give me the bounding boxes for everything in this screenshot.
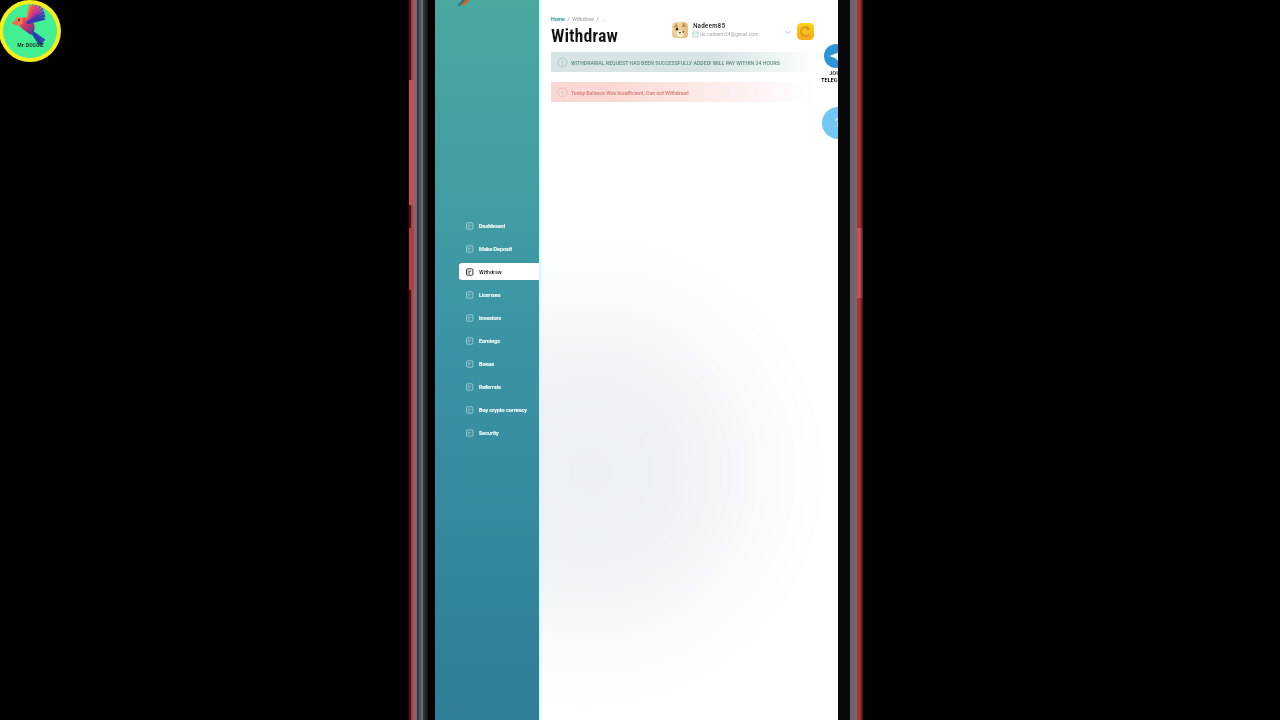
staticText: Investors bbox=[479, 315, 502, 321]
button[interactable]: Dashboard bbox=[459, 217, 539, 234]
button[interactable]: Bonus bbox=[459, 355, 539, 372]
button[interactable]: Join Telegram bbox=[824, 44, 848, 68]
button[interactable]: Buy crypto currency bbox=[459, 401, 539, 418]
staticText: Home bbox=[551, 16, 565, 22]
button[interactable]: Refresh balance bbox=[797, 23, 814, 40]
button[interactable]: Nadeem85 bbox=[672, 22, 791, 41]
staticText: Licenses bbox=[479, 292, 501, 298]
button[interactable]: Support chat bbox=[822, 107, 854, 139]
staticText: JOIN TELEGRAM bbox=[821, 70, 850, 84]
staticText: Withdraw bbox=[551, 25, 618, 46]
button[interactable]: Investors bbox=[459, 309, 539, 326]
staticText: Earnings bbox=[479, 338, 501, 344]
staticText: Withdraw bbox=[479, 269, 502, 275]
button[interactable]: Referrals bbox=[459, 378, 539, 395]
staticText: Bonus bbox=[479, 361, 495, 367]
staticText: Make Deposit bbox=[479, 246, 513, 252]
button[interactable]: Make Deposit bbox=[459, 240, 539, 257]
staticText: Mr. DOGGIE bbox=[17, 42, 44, 48]
button[interactable]: Earnings bbox=[459, 332, 539, 349]
button[interactable]: Licenses bbox=[459, 286, 539, 303]
staticText: Referrals bbox=[479, 384, 501, 390]
staticText: du.nadeem24@gmail.com bbox=[700, 31, 759, 37]
staticText: Security bbox=[479, 430, 499, 436]
staticText: Dashboard bbox=[479, 223, 506, 229]
staticText: WITHDRAWAL REQUEST HAS BEEN SUCCESSFULLY… bbox=[571, 60, 780, 66]
staticText: Buy crypto currency bbox=[479, 407, 527, 413]
staticText: Nadeem85 bbox=[693, 21, 726, 30]
staticText: ? bbox=[835, 116, 841, 130]
button[interactable]: Withdraw bbox=[459, 263, 539, 280]
staticText: Today Balance Was Insufficient, Can not … bbox=[571, 90, 689, 96]
button[interactable]: Security bbox=[459, 424, 539, 441]
staticText: / Withdraw / ... bbox=[565, 16, 606, 22]
